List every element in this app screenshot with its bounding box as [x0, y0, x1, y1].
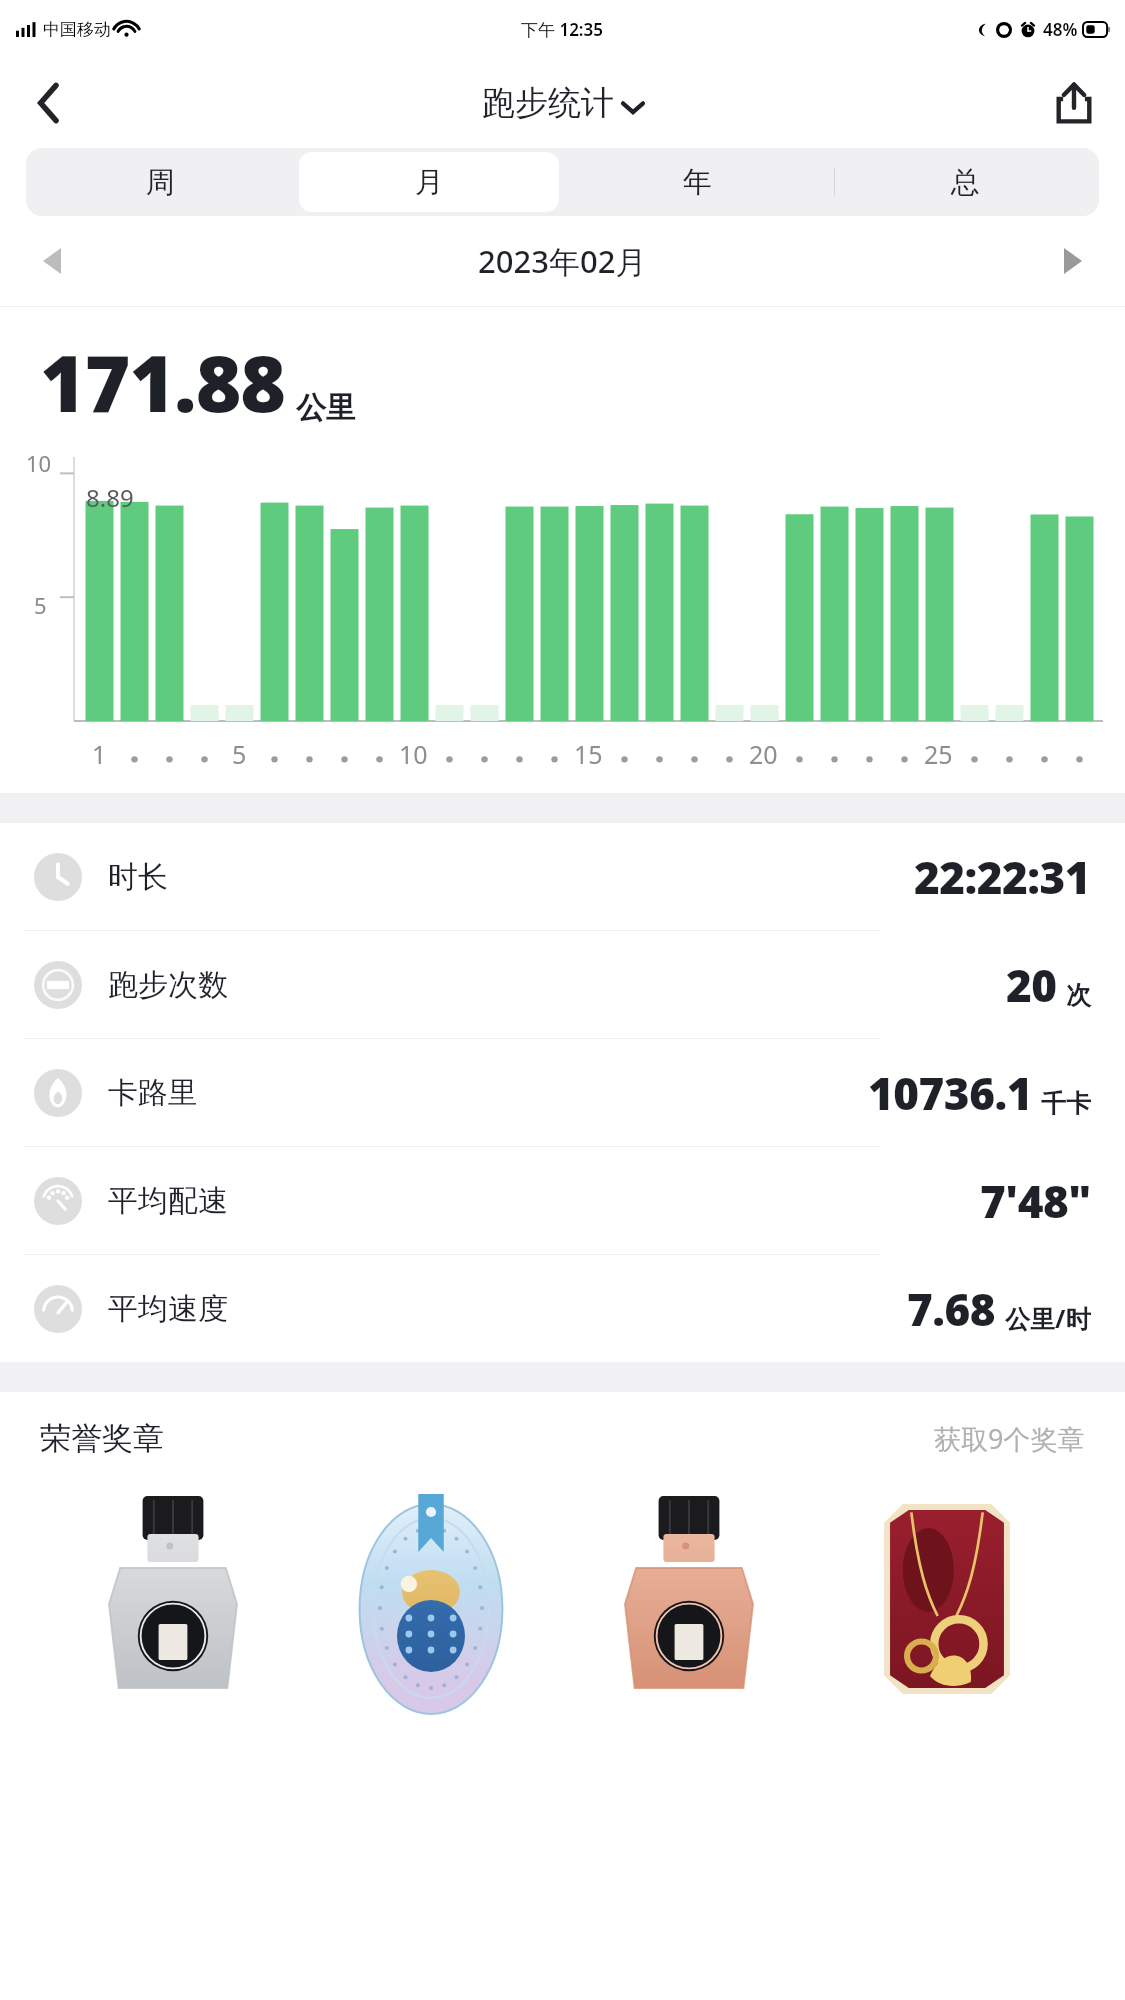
staticText: 公里/时	[1005, 1301, 1091, 1335]
staticText: 跑步次数	[108, 966, 228, 1004]
staticText: 月	[415, 164, 444, 201]
button[interactable]: 周	[30, 152, 291, 212]
staticText: 千卡	[1041, 1088, 1091, 1119]
staticText: 跑步统计	[482, 82, 614, 124]
staticText: 7'48"	[980, 1171, 1091, 1231]
staticText: 平均速度	[108, 1290, 228, 1328]
button[interactable]: 跑步次数	[0, 931, 1125, 1038]
button[interactable]: 荣誉奖章	[0, 1392, 1125, 1484]
staticText: 7.68	[907, 1279, 996, 1339]
button[interactable]: Next month	[1045, 233, 1101, 289]
button[interactable]: 卡路里	[0, 1039, 1125, 1146]
button[interactable]: Back	[18, 72, 80, 134]
button[interactable]: Share	[1043, 72, 1105, 134]
button[interactable]: 月	[299, 152, 559, 212]
button[interactable]: Previous month	[24, 233, 80, 289]
button[interactable]: 跑步统计	[482, 82, 643, 124]
staticText: 5	[232, 737, 247, 771]
staticText: 10736.1	[868, 1063, 1032, 1123]
staticText: 荣誉奖章	[40, 1419, 164, 1458]
staticText: 10	[399, 737, 428, 771]
staticText: 20	[749, 737, 778, 771]
button[interactable]: 平均速度	[0, 1255, 1125, 1362]
staticText: 获取9个奖章	[934, 1420, 1085, 1457]
staticText: 时长	[108, 858, 168, 896]
staticText: 1	[92, 737, 107, 771]
staticText: 平均配速	[108, 1182, 228, 1220]
staticText: 25	[924, 737, 953, 771]
staticText: 20	[1006, 955, 1057, 1015]
staticText: 15	[574, 737, 603, 771]
staticText: 22:22:31	[914, 847, 1091, 907]
staticText: 171.88	[40, 329, 286, 435]
staticText: 中国移动	[43, 19, 111, 40]
button[interactable]	[609, 1484, 769, 1684]
button[interactable]	[862, 1484, 1032, 1684]
button[interactable]: 时长	[0, 823, 1125, 930]
staticText: 卡路里	[108, 1074, 198, 1112]
staticText: 48%	[1043, 18, 1078, 41]
button[interactable]	[346, 1484, 516, 1684]
staticText: 年	[683, 164, 712, 201]
staticText: 下午 12:35	[521, 18, 604, 41]
button[interactable]: 年	[567, 152, 827, 212]
staticText: 总	[951, 164, 980, 201]
staticText: 8.89	[86, 481, 134, 514]
button[interactable]: 总	[835, 152, 1095, 212]
staticText: 10	[26, 448, 52, 478]
staticText: 周	[146, 164, 175, 201]
staticText: 5	[34, 590, 47, 620]
staticText: 公里	[296, 389, 356, 427]
button[interactable]	[93, 1484, 253, 1684]
staticText: 次	[1066, 980, 1091, 1011]
staticText: 2023年02月	[478, 240, 647, 282]
button[interactable]: 平均配速	[0, 1147, 1125, 1254]
